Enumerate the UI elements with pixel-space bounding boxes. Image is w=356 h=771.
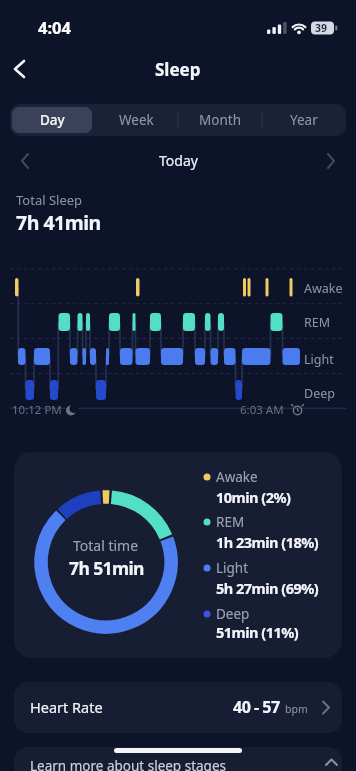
- staticText: Year: [290, 111, 318, 129]
- staticText: Light: [304, 351, 334, 368]
- staticText: Day: [40, 111, 65, 129]
- staticText: 4:04: [38, 16, 71, 38]
- staticText: Heart Rate: [30, 697, 103, 717]
- staticText: Month: [199, 111, 241, 129]
- button[interactable]: Learn more about sleep stages: [14, 747, 342, 771]
- button[interactable]: Day: [10, 104, 94, 136]
- button[interactable]: [12, 148, 38, 174]
- staticText: Awake: [216, 468, 258, 486]
- staticText: REM: [304, 314, 331, 331]
- staticText: Deep: [216, 605, 250, 623]
- staticText: Awake: [304, 280, 343, 297]
- staticText: 10:12 PM: [12, 402, 62, 418]
- staticText: 40 - 57: [233, 696, 280, 718]
- staticText: 10min (2%): [216, 487, 291, 507]
- staticText: Week: [119, 111, 154, 129]
- staticText: bpm: [285, 702, 308, 716]
- staticText: Total time: [73, 536, 139, 555]
- button[interactable]: [6, 57, 42, 83]
- staticText: 7h 41min: [16, 209, 101, 236]
- staticText: Light: [216, 559, 249, 577]
- button[interactable]: [318, 148, 344, 174]
- staticText: Deep: [304, 385, 335, 402]
- staticText: REM: [216, 513, 245, 531]
- staticText: 7h 51min: [69, 556, 144, 580]
- button[interactable]: Year: [262, 104, 346, 136]
- staticText: Learn more about sleep stages: [30, 757, 226, 771]
- staticText: Total Sleep: [16, 191, 83, 209]
- staticText: 51min (11%): [216, 622, 299, 642]
- staticText: 5h 27min (69%): [216, 578, 319, 598]
- button[interactable]: Month: [178, 104, 262, 136]
- button[interactable]: Heart Rate: [14, 682, 342, 733]
- staticText: 1h 23min (18%): [216, 532, 319, 552]
- staticText: 6:03 AM: [240, 402, 284, 418]
- staticText: Today: [159, 151, 198, 170]
- staticText: 39: [315, 21, 328, 35]
- button[interactable]: Week: [94, 104, 178, 136]
- staticText: Sleep: [155, 58, 201, 81]
